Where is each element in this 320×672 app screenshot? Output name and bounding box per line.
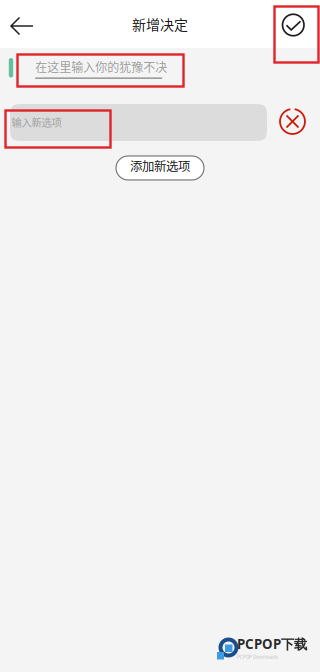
button[interactable]: 添加新选项 [116, 156, 204, 180]
button[interactable]: Back [0, 0, 47, 48]
staticText: PCPOP Downloads [237, 654, 278, 660]
staticText: 在这里输入你的犹豫不决 [35, 58, 167, 75]
button[interactable]: 在这里输入你的犹豫不决 [35, 58, 167, 79]
button[interactable]: Confirm [268, 0, 320, 48]
staticText: 新增决定 [132, 14, 188, 34]
staticText: 输入新选项 [11, 114, 61, 129]
staticText: 添加新选项 [130, 156, 190, 174]
button[interactable]: 输入新选项 [10, 104, 267, 141]
button[interactable]: Remove option [267, 110, 319, 135]
staticText: PCPOP下载 [237, 635, 307, 653]
